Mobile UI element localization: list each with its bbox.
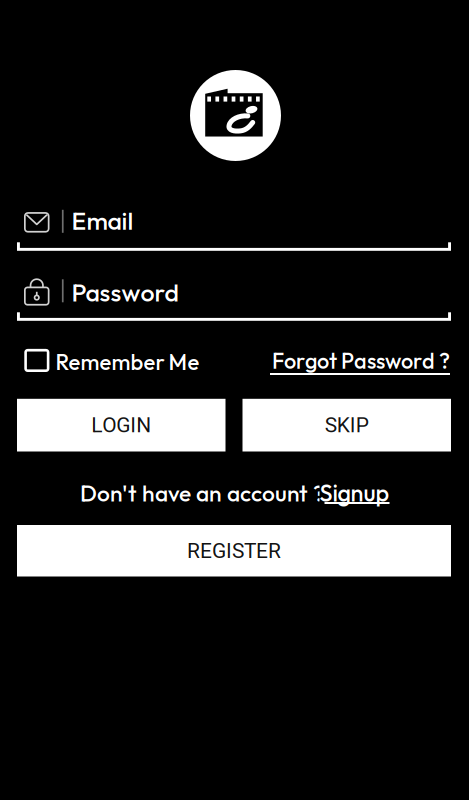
staticText: SKIP: [325, 413, 369, 437]
button[interactable]: REGISTER: [17, 525, 451, 576]
staticText: Remember Me: [56, 348, 200, 376]
button[interactable]: Remember Me: [25, 349, 200, 375]
button[interactable]: Signup: [319, 478, 389, 506]
button[interactable]: Email: [17, 208, 451, 255]
staticText: LOGIN: [91, 413, 151, 437]
staticText: Signup: [319, 478, 389, 508]
staticText: Email: [71, 205, 133, 236]
staticText: REGISTER: [187, 538, 281, 563]
button[interactable]: LOGIN: [17, 399, 225, 451]
staticText: Forgot Password ?: [272, 347, 450, 374]
button[interactable]: Password: [17, 276, 451, 323]
staticText: Password: [71, 276, 178, 308]
button[interactable]: SKIP: [242, 399, 451, 451]
button[interactable]: Forgot Password ?: [272, 347, 454, 377]
staticText: Don't have an account ?: [80, 479, 325, 507]
